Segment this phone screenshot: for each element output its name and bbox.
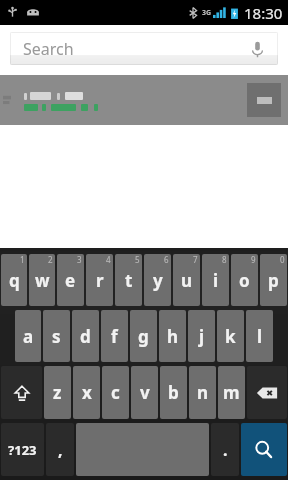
- button[interactable]: h: [159, 310, 186, 362]
- staticText: q: [9, 269, 20, 292]
- staticText: 3G: [202, 8, 212, 18]
- staticText: j: [199, 325, 205, 348]
- staticText: 7: [193, 254, 198, 265]
- staticText: 6: [164, 254, 169, 265]
- staticText: 2: [48, 254, 53, 265]
- button[interactable]: j: [188, 310, 215, 362]
- staticText: l: [257, 325, 263, 348]
- staticText: b: [168, 381, 179, 404]
- button[interactable]: z: [44, 366, 71, 419]
- button[interactable]: m: [218, 366, 245, 419]
- button[interactable]: f: [101, 310, 128, 362]
- button[interactable]: l: [246, 310, 273, 362]
- staticText: z: [53, 381, 62, 404]
- button[interactable]: y: [144, 254, 171, 306]
- staticText: ,: [58, 439, 63, 461]
- staticText: w: [35, 269, 50, 292]
- staticText: n: [197, 381, 209, 404]
- staticText: s: [52, 325, 61, 348]
- staticText: x: [82, 381, 92, 404]
- staticText: m: [223, 381, 240, 404]
- staticText: v: [140, 381, 150, 404]
- button[interactable]: t: [115, 254, 142, 306]
- staticText: 0: [280, 254, 285, 265]
- button[interactable]: Search: [10, 32, 278, 65]
- button[interactable]: .: [211, 423, 239, 476]
- staticText: Search: [23, 38, 74, 60]
- staticText: 9: [251, 254, 256, 265]
- staticText: 4: [106, 254, 111, 265]
- button[interactable]: p: [260, 254, 287, 306]
- staticText: d: [80, 325, 91, 348]
- staticText: 5: [135, 254, 140, 265]
- button[interactable]: u: [173, 254, 200, 306]
- button[interactable]: v: [131, 366, 158, 419]
- staticText: p: [268, 269, 279, 292]
- button[interactable]: g: [130, 310, 157, 362]
- staticText: g: [138, 325, 149, 348]
- button[interactable]: ,: [46, 423, 74, 476]
- button[interactable]: o: [231, 254, 258, 306]
- button[interactable]: e: [57, 254, 84, 306]
- staticText: e: [65, 269, 76, 292]
- button[interactable]: x: [73, 366, 100, 419]
- button[interactable]: [0, 75, 288, 125]
- button[interactable]: b: [160, 366, 187, 419]
- staticText: y: [153, 269, 163, 292]
- button[interactable]: a: [15, 310, 41, 362]
- button[interactable]: r: [86, 254, 113, 306]
- staticText: r: [96, 269, 104, 292]
- staticText: k: [225, 325, 236, 348]
- button[interactable]: k: [217, 310, 244, 362]
- button[interactable]: d: [72, 310, 99, 362]
- button[interactable]: Search: [241, 423, 287, 476]
- button[interactable]: s: [43, 310, 70, 362]
- button[interactable]: q: [1, 254, 27, 306]
- staticText: 18:30: [244, 3, 283, 23]
- staticText: o: [239, 269, 250, 292]
- button[interactable]: c: [102, 366, 129, 419]
- staticText: 3: [77, 254, 82, 265]
- staticText: c: [111, 381, 120, 404]
- staticText: .: [223, 439, 228, 461]
- staticText: f: [111, 325, 118, 348]
- button[interactable]: i: [202, 254, 229, 306]
- button[interactable]: Shift: [1, 366, 42, 419]
- staticText: 1: [20, 254, 25, 265]
- staticText: 8: [222, 254, 227, 265]
- staticText: h: [167, 325, 179, 348]
- staticText: ?123: [8, 441, 37, 459]
- staticText: i: [213, 269, 219, 292]
- staticText: t: [125, 269, 133, 292]
- button[interactable]: ?123: [1, 423, 44, 476]
- button[interactable]: Backspace: [247, 366, 287, 419]
- staticText: u: [181, 269, 193, 292]
- button[interactable]: Voice search: [244, 36, 270, 62]
- button[interactable]: n: [189, 366, 216, 419]
- staticText: a: [23, 325, 34, 348]
- button[interactable]: w: [29, 254, 55, 306]
